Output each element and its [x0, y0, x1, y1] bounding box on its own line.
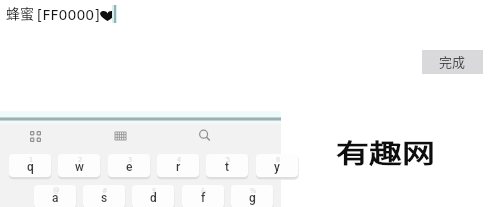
staticText: a	[52, 191, 59, 205]
staticText: q	[27, 160, 34, 174]
button[interactable]: 1	[9, 154, 51, 177]
staticText: [FF0000]	[37, 7, 100, 23]
button[interactable]: Keyboard	[106, 122, 134, 150]
staticText: @	[53, 187, 60, 195]
staticText: &	[201, 187, 207, 195]
staticText: e	[126, 160, 133, 174]
button[interactable]: #	[83, 185, 125, 207]
button[interactable]: 4	[157, 154, 199, 177]
staticText: 2	[78, 156, 83, 164]
staticText: $	[152, 187, 157, 195]
staticText: 6	[276, 156, 281, 164]
button[interactable]: 2	[58, 154, 100, 177]
button[interactable]: &	[182, 185, 224, 207]
staticText: 1	[29, 156, 34, 164]
button[interactable]: Search	[190, 121, 218, 149]
staticText: 3	[128, 156, 133, 164]
staticText: %	[250, 187, 257, 195]
staticText: 5	[226, 156, 231, 164]
staticText: 蜂蜜	[6, 3, 34, 23]
staticText: g	[249, 191, 256, 205]
staticText: w	[75, 160, 84, 174]
staticText: 4	[177, 156, 182, 164]
button[interactable]: 6	[256, 154, 298, 177]
staticText: #	[102, 187, 108, 195]
staticText: y	[274, 160, 280, 174]
staticText: f	[201, 191, 206, 205]
staticText: d	[150, 191, 157, 205]
button[interactable]: $	[132, 185, 174, 207]
button[interactable]: 3	[108, 154, 150, 177]
button[interactable]: 5	[206, 154, 248, 177]
button[interactable]: Apps	[21, 122, 49, 150]
staticText: r	[176, 160, 181, 174]
button[interactable]: 完成	[422, 50, 483, 74]
button[interactable]: @	[34, 185, 76, 207]
staticText: t	[225, 160, 229, 174]
staticText: 完成	[439, 52, 466, 71]
staticText: s	[101, 191, 108, 205]
staticText: 有趣网	[336, 133, 436, 171]
button[interactable]: %	[231, 185, 273, 207]
